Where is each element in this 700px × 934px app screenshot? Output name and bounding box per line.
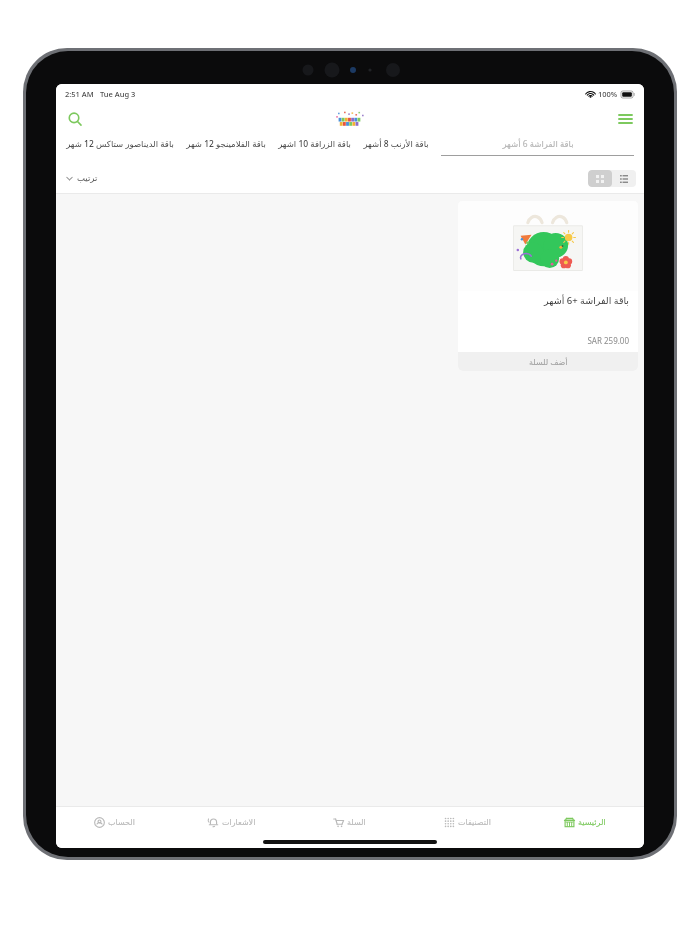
button[interactable]: الرئيسية (526, 810, 644, 834)
staticText: باقة الفلامينجو 12 شهر (186, 138, 266, 150)
button[interactable]: Search (62, 106, 88, 132)
button[interactable]: باقة الأرنب 8 أشهر (357, 134, 435, 154)
staticText: باقة الفراشة 6 أشهر (502, 138, 574, 150)
staticText: 100% (598, 89, 618, 99)
staticText: باقة الأرنب 8 أشهر (363, 138, 429, 150)
button[interactable]: الاشعارات (173, 810, 290, 834)
button[interactable]: باقة الديناصور ستاكس 12 شهر (60, 134, 180, 154)
staticText: 2:51 AM (65, 89, 94, 99)
button[interactable]: التصنيفات (408, 810, 526, 834)
button[interactable]: باقة الزرافة 10 اشهر (272, 134, 357, 154)
staticText: SAR 259.00 (467, 335, 629, 346)
staticText: باقة الزرافة 10 اشهر (278, 138, 351, 150)
button[interactable]: ترتيب (64, 170, 100, 186)
button[interactable]: Logo (333, 109, 367, 129)
button[interactable]: الحساب (56, 810, 173, 834)
button[interactable]: باقة الفراشة +6 أشهر (458, 201, 638, 371)
staticText: ترتيب (77, 173, 98, 183)
staticText: أضف للسلة (529, 356, 568, 367)
button[interactable]: List view (612, 170, 636, 187)
button[interactable]: أضف للسلة (458, 352, 638, 371)
button[interactable]: باقة الفلامينجو 12 شهر (180, 134, 272, 154)
staticText: الاشعارات (222, 818, 256, 827)
staticText: الرئيسية (578, 818, 606, 827)
button[interactable]: باقة الفراشة 6 أشهر (435, 134, 640, 160)
button[interactable]: السلة (290, 810, 408, 834)
staticText: باقة الديناصور ستاكس 12 شهر (66, 138, 174, 150)
button[interactable]: Grid view (588, 170, 612, 187)
button[interactable]: Menu (612, 106, 638, 132)
staticText: السلة (347, 818, 366, 827)
staticText: الحساب (108, 818, 135, 827)
staticText: باقة الفراشة +6 أشهر (467, 294, 629, 307)
staticText: Tue Aug 3 (100, 89, 136, 99)
staticText: التصنيفات (458, 818, 491, 827)
